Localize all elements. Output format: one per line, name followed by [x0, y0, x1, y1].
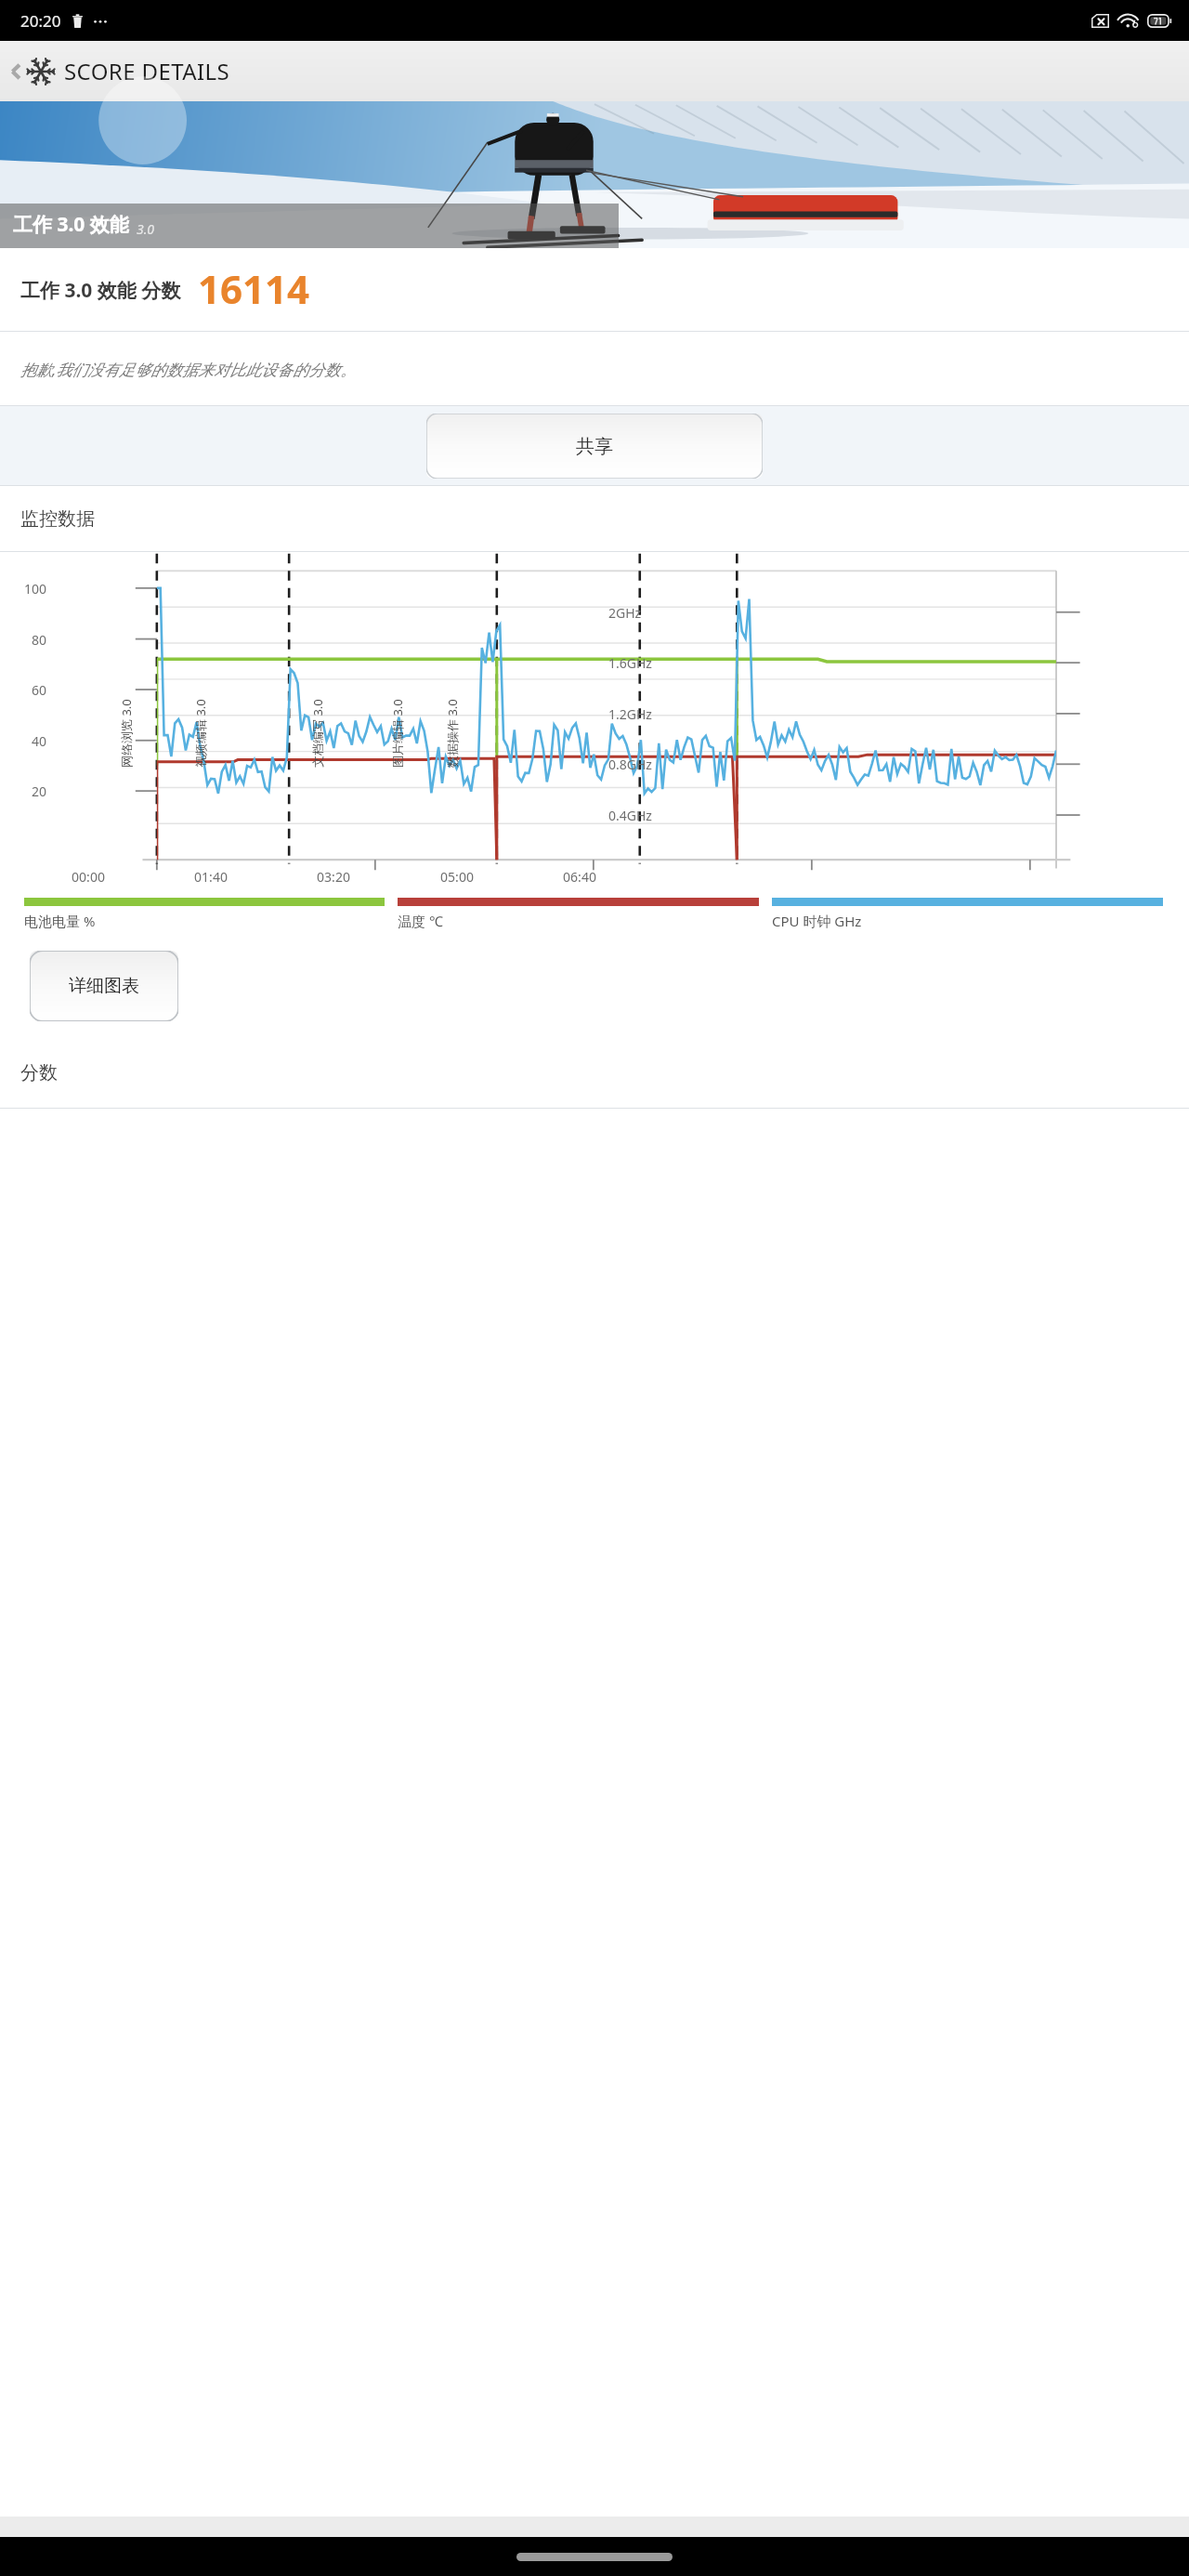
staticText: 06:40 [555, 868, 605, 886]
staticText: 分数 [20, 1061, 58, 1084]
staticText: 00:00 [63, 868, 113, 886]
staticText: CPU 时钟 GHz [772, 912, 862, 930]
staticText: 20 [11, 782, 46, 800]
other: Home [516, 2553, 673, 2561]
staticText: 0.8GHz [608, 756, 652, 773]
button[interactable]: 共享 [426, 414, 763, 479]
staticText: 100 [11, 580, 46, 598]
staticText: 3.0 [137, 220, 155, 238]
staticText: 共享 [576, 435, 613, 458]
staticText: 80 [11, 631, 46, 649]
staticText: 0.4GHz [608, 807, 652, 824]
staticText: 05:00 [432, 868, 482, 886]
staticText: 40 [11, 732, 46, 750]
staticText: 抱歉,我们没有足够的数据来对比此设备的分数。 [20, 359, 1189, 380]
staticText: 监控数据 [20, 507, 95, 531]
staticText: 工作 3.0 效能 [13, 211, 129, 238]
staticText: 文档编写 3.0 [309, 699, 326, 768]
staticText: 视频编辑 3.0 [192, 699, 209, 768]
staticText: 温度 ℃ [398, 912, 443, 930]
other: Back [9, 59, 22, 84]
staticText: 电池电量 % [24, 912, 96, 930]
staticText: 网络浏览 3.0 [118, 699, 135, 768]
staticText: 数据操作 3.0 [444, 699, 461, 768]
staticText: 详细图表 [69, 975, 139, 997]
staticText: 2GHz [608, 604, 642, 622]
staticText: 16114 [198, 262, 310, 315]
staticText: 03:20 [308, 868, 359, 886]
button[interactable]: 详细图表 [30, 951, 178, 1021]
staticText: 01:40 [186, 868, 236, 886]
staticText: SCORE DETAILS [64, 56, 230, 86]
staticText: 图片编辑 3.0 [389, 699, 406, 768]
staticText: 20:20 [20, 10, 61, 32]
staticText: 1.6GHz [608, 654, 652, 672]
staticText: 1.2GHz [608, 705, 652, 723]
button[interactable]: Back [6, 56, 234, 86]
staticText: 60 [11, 681, 46, 699]
staticText: 工作 3.0 效能 分数 [20, 277, 181, 304]
